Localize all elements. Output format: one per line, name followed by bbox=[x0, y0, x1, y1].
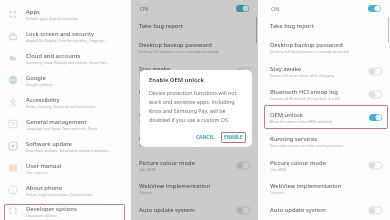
button[interactable]: User manual bbox=[0, 157, 127, 179]
button[interactable]: Picture colour mode bbox=[139, 154, 250, 177]
staticText: Vision, Hearing, Dexterity and interacti… bbox=[26, 104, 96, 109]
staticText: View and control currently running servi… bbox=[139, 143, 213, 148]
staticText: Running services bbox=[139, 135, 187, 143]
staticText: Screen will never sleep while charging bbox=[139, 73, 203, 78]
staticText: Bluetooth HCI snoop log bbox=[270, 88, 338, 96]
staticText: Enable OEM unlock bbox=[149, 76, 205, 84]
button[interactable]: Cloud and accounts bbox=[0, 47, 127, 69]
staticText: WebView implementation bbox=[139, 182, 211, 190]
button[interactable]: Stay awake bbox=[139, 59, 250, 83]
button[interactable]: Accounts and backup bbox=[0, 0, 127, 220]
staticText: Language and input, Date and time, Reset bbox=[26, 126, 97, 131]
staticText: Capture all Bluetooth HCI packets in a f… bbox=[270, 96, 340, 101]
staticText: Chrome bbox=[270, 190, 284, 195]
staticText: Developer options bbox=[26, 205, 77, 213]
button[interactable]: Take bug report bbox=[270, 16, 382, 35]
staticText: Default apps, App permissions bbox=[26, 16, 78, 21]
staticText: Screen will never sleep while charging bbox=[270, 73, 334, 78]
button[interactable]: ON bbox=[140, 0, 249, 16]
staticText: View and control currently running servi… bbox=[270, 143, 344, 148]
button[interactable]: ON bbox=[271, 0, 381, 16]
staticText: Allow the device to be OEM unlocked bbox=[270, 119, 333, 124]
staticText: Lock screen and security bbox=[26, 30, 95, 38]
button[interactable]: Desktop backup password bbox=[139, 35, 250, 59]
staticText: ENABLE bbox=[224, 134, 243, 141]
staticText: User manual bbox=[26, 162, 62, 170]
staticText: General management bbox=[26, 118, 87, 126]
button[interactable]: WebView implementation bbox=[270, 177, 382, 200]
staticText: Bluetooth HCI snoop log bbox=[139, 88, 207, 96]
button[interactable]: Apps bbox=[0, 3, 127, 25]
button[interactable]: Lock screen and security bbox=[0, 25, 127, 47]
button[interactable]: Stay awake bbox=[270, 59, 382, 83]
staticText: Desktop backup password bbox=[139, 41, 212, 49]
staticText: Desktop full backups aren't currently pr… bbox=[139, 49, 219, 54]
button[interactable]: Picture colour mode bbox=[270, 154, 382, 177]
staticText: Stay awake bbox=[139, 65, 171, 73]
button[interactable]: Software update bbox=[0, 135, 127, 157]
button[interactable]: Developer options bbox=[0, 201, 127, 220]
button[interactable]: OEM unlock bbox=[270, 106, 382, 129]
staticText: Cloud and accounts bbox=[26, 52, 81, 60]
staticText: Developer options bbox=[26, 213, 57, 218]
staticText: Stay awake bbox=[270, 65, 302, 73]
staticText: Picture colour mode bbox=[139, 159, 196, 167]
button[interactable]: Bluetooth HCI snoop log bbox=[270, 83, 382, 106]
staticText: Allow the device to be OEM unlocked bbox=[139, 119, 202, 124]
staticText: OEM unlock bbox=[270, 111, 304, 119]
button[interactable]: Google bbox=[0, 69, 127, 91]
staticText: Auto update system bbox=[270, 206, 326, 214]
staticText: Chrome bbox=[139, 190, 153, 195]
staticText: Take bug report bbox=[139, 22, 183, 30]
staticText: Capture all Bluetooth HCI packets in a f… bbox=[139, 96, 209, 101]
staticText: Software update bbox=[26, 140, 72, 148]
staticText: User manual bbox=[26, 170, 48, 175]
staticText: Use sRGB bbox=[270, 167, 287, 172]
button[interactable]: Accessibility bbox=[0, 91, 127, 113]
staticText: ON bbox=[140, 5, 236, 12]
staticText: Google settings bbox=[26, 82, 53, 87]
staticText: CANCEL bbox=[196, 134, 215, 141]
staticText: Desktop full backups aren't currently pr… bbox=[270, 49, 350, 54]
button[interactable]: General management bbox=[0, 113, 127, 135]
staticText: Always On Display, Face Recognition, Fin… bbox=[26, 38, 108, 43]
staticText: Google bbox=[26, 74, 46, 82]
button[interactable]: Bluetooth HCI snoop log bbox=[139, 83, 250, 106]
staticText: Use sRGB bbox=[139, 167, 156, 172]
button[interactable]: Desktop backup password bbox=[270, 35, 382, 59]
button[interactable]: OEM unlock bbox=[139, 106, 250, 129]
staticText: Accessibility bbox=[26, 96, 60, 104]
button[interactable]: Auto update system bbox=[270, 200, 382, 220]
button[interactable]: ENABLE bbox=[221, 132, 246, 143]
button[interactable]: About phone bbox=[0, 179, 127, 201]
staticText: WebView implementation bbox=[270, 182, 342, 190]
staticText: Device protection functions will not wor… bbox=[149, 89, 246, 124]
button[interactable]: WebView implementation bbox=[139, 177, 250, 200]
button[interactable]: Auto update system bbox=[139, 200, 250, 220]
staticText: Take bug report bbox=[270, 22, 314, 30]
staticText: Running services bbox=[270, 135, 318, 143]
staticText: ON bbox=[271, 5, 368, 12]
staticText: Desktop backup password bbox=[270, 41, 343, 49]
button[interactable]: Take bug report bbox=[139, 16, 250, 35]
staticText: About phone bbox=[26, 184, 63, 192]
staticText: Apps bbox=[26, 8, 40, 16]
button[interactable]: Running services bbox=[270, 129, 382, 154]
button[interactable]: Running services bbox=[139, 129, 250, 154]
staticText: Download updates, Scheduled software upd… bbox=[26, 148, 111, 153]
staticText: OEM unlock bbox=[139, 111, 173, 119]
button[interactable]: CANCEL bbox=[193, 132, 218, 143]
staticText: Picture colour mode bbox=[270, 159, 327, 167]
staticText: Status, Legal information, Device name bbox=[26, 192, 92, 197]
staticText: Auto update system bbox=[139, 206, 195, 214]
staticText: Samsung Cloud, Backup and restore, Smart… bbox=[26, 60, 109, 65]
